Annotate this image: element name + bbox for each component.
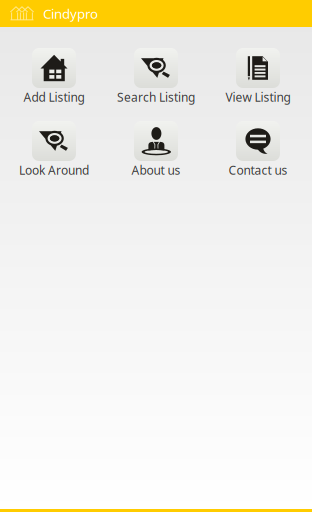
button[interactable]: View Listing bbox=[207, 48, 309, 103]
staticText: About us bbox=[131, 162, 180, 178]
button[interactable]: About us bbox=[105, 121, 207, 176]
button[interactable]: Search Listing bbox=[105, 48, 207, 103]
staticText: View Listing bbox=[225, 89, 290, 105]
staticText: Look Around bbox=[19, 162, 89, 178]
staticText: Add Listing bbox=[23, 89, 84, 105]
staticText: Cindypro bbox=[43, 5, 98, 22]
button[interactable]: Add Listing bbox=[3, 48, 105, 103]
button[interactable]: Contact us bbox=[207, 121, 309, 176]
staticText: Search Listing bbox=[117, 89, 195, 105]
staticText: Contact us bbox=[228, 162, 287, 178]
button[interactable]: Look Around bbox=[3, 121, 105, 176]
